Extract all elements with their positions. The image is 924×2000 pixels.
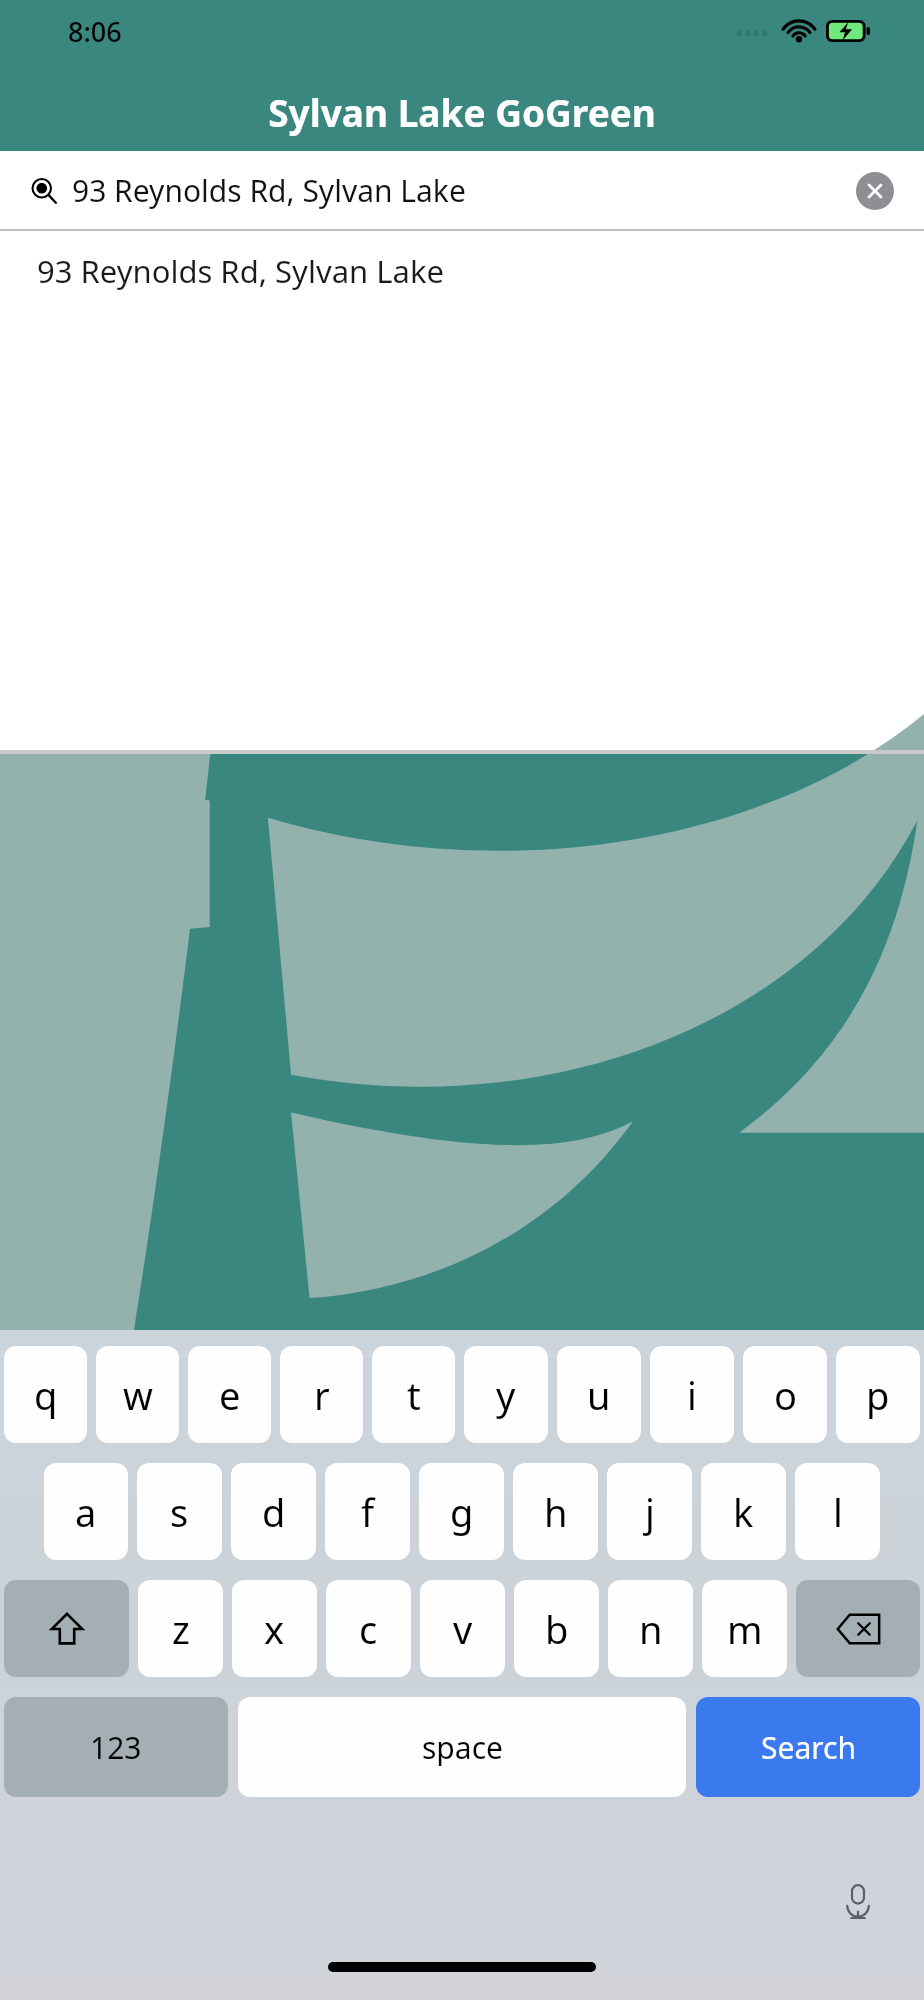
button[interactable]: 123 [4,1697,228,1797]
staticText: t [407,1369,421,1421]
staticText: d [262,1486,286,1538]
staticText: 93 Reynolds Rd, Sylvan Lake [37,250,444,292]
staticText: z [172,1603,190,1655]
staticText: c [359,1603,378,1655]
button[interactable]: j [607,1463,692,1560]
staticText: o [774,1369,797,1421]
button[interactable]: Voice input [834,1878,882,1926]
staticText: a [75,1486,97,1538]
button[interactable]: y [464,1346,548,1443]
staticText: 8:06 [68,13,122,50]
button[interactable]: t [372,1346,455,1443]
staticText: 93 Reynolds Rd, Sylvan Lake [72,170,466,211]
button[interactable]: 93 Reynolds Rd, Sylvan Lake [0,231,924,311]
staticText: x [264,1603,285,1655]
button[interactable]: z [138,1580,223,1677]
staticText: j [645,1486,655,1538]
button[interactable]: i [650,1346,734,1443]
button[interactable]: w [96,1346,179,1443]
button[interactable]: h [513,1463,598,1560]
button[interactable]: Backspace [796,1580,920,1677]
other: Search [30,177,58,205]
button[interactable]: p [836,1346,920,1443]
staticText: w [123,1369,153,1421]
button[interactable]: Shift [4,1580,129,1677]
staticText: u [587,1369,611,1421]
staticText: s [170,1486,189,1538]
button[interactable]: s [137,1463,222,1560]
button[interactable]: space [238,1697,686,1797]
staticText: Search [761,1727,856,1768]
button[interactable]: m [702,1580,787,1677]
staticText: p [866,1369,890,1421]
button[interactable]: o [743,1346,827,1443]
staticText: q [34,1369,58,1421]
button[interactable]: Search [696,1697,920,1797]
button[interactable]: c [326,1580,411,1677]
staticText: y [496,1369,516,1421]
staticText: b [545,1603,569,1655]
button[interactable]: Clear text [856,172,894,210]
button[interactable]: Search [0,151,924,229]
button[interactable]: a [44,1463,128,1560]
button[interactable]: f [325,1463,410,1560]
staticText: e [219,1369,241,1421]
staticText: h [544,1486,568,1538]
button[interactable]: l [795,1463,880,1560]
staticText: l [833,1486,843,1538]
staticText: Sylvan Lake GoGreen [268,87,656,137]
staticText: space [422,1727,503,1768]
button[interactable]: e [188,1346,271,1443]
staticText: k [733,1486,754,1538]
staticText: r [314,1369,330,1421]
button[interactable]: r [280,1346,363,1443]
button[interactable]: n [608,1580,693,1677]
button[interactable]: q [4,1346,87,1443]
staticText: 123 [90,1727,142,1768]
staticText: m [727,1603,763,1655]
button[interactable]: d [231,1463,316,1560]
button[interactable]: b [514,1580,599,1677]
button[interactable]: g [419,1463,504,1560]
button[interactable]: x [232,1580,317,1677]
staticText: i [687,1369,697,1421]
staticText: v [453,1603,473,1655]
staticText: g [450,1486,474,1538]
staticText: f [361,1486,375,1538]
button[interactable]: u [557,1346,641,1443]
button[interactable]: k [701,1463,786,1560]
button[interactable]: v [420,1580,505,1677]
staticText: n [639,1603,663,1655]
